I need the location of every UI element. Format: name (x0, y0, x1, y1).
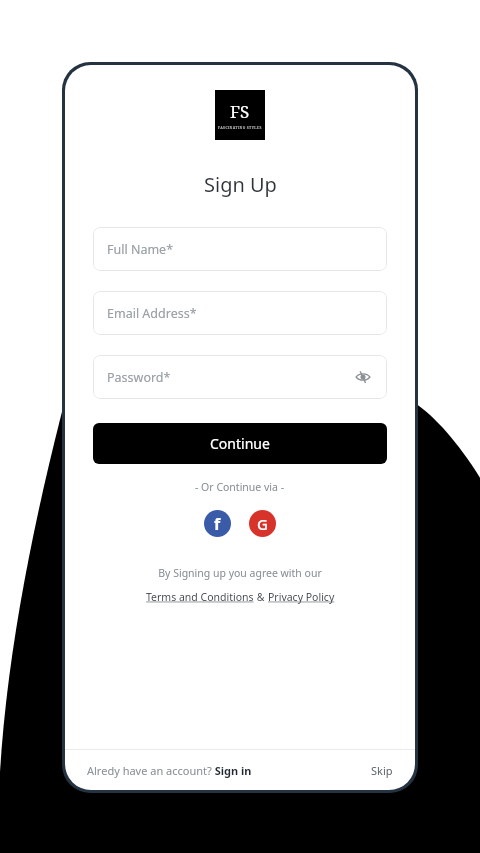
button[interactable]: Continue (93, 423, 387, 464)
staticText: By Signing up you agree with our (158, 566, 322, 580)
staticText: Continue (210, 434, 270, 453)
staticText: Alredy have an account? Sign in (87, 763, 252, 778)
staticText: Terms and Conditions (146, 590, 254, 604)
staticText: & (254, 590, 268, 604)
button[interactable]: Continue with Facebook (204, 510, 231, 537)
button[interactable]: Alredy have an account? Sign in (87, 763, 252, 778)
staticText: FASCINATING STYLES (218, 125, 262, 130)
button[interactable]: Password* (93, 355, 387, 399)
staticText: Full Name* (107, 241, 174, 258)
staticText: Skip (371, 763, 393, 778)
staticText: Privacy Policy (268, 590, 335, 604)
staticText: G (257, 514, 268, 534)
button[interactable]: Show password (353, 367, 373, 387)
button[interactable]: Terms and Conditions (146, 590, 254, 604)
button[interactable]: Continue with Google (249, 510, 276, 537)
button[interactable]: Privacy Policy (268, 590, 335, 604)
button[interactable]: Full Name* (93, 227, 387, 271)
staticText: Password* (107, 369, 171, 386)
staticText: FS (230, 100, 250, 123)
staticText: - Or Continue via - (195, 480, 285, 494)
staticText: f (214, 513, 221, 535)
button[interactable]: Skip (371, 763, 393, 778)
button[interactable]: Email Address* (93, 291, 387, 335)
staticText: Email Address* (107, 305, 197, 322)
staticText: Sign Up (204, 171, 277, 198)
